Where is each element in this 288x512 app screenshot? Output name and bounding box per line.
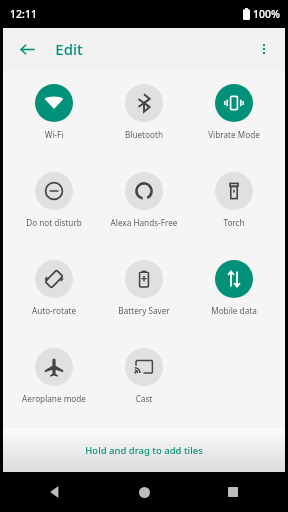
- button[interactable]: Back: [12, 34, 42, 64]
- staticText: Cast: [101, 393, 187, 404]
- staticText: Wi-Fi: [11, 129, 97, 140]
- staticText: Vibrate Mode: [191, 129, 277, 140]
- button[interactable]: Home: [129, 477, 159, 507]
- button[interactable]: More options: [250, 35, 278, 63]
- button[interactable]: Hold and drag to add tiles: [3, 428, 285, 472]
- staticText: 100%: [253, 7, 280, 21]
- button[interactable]: Mobile data: [189, 260, 279, 316]
- button[interactable]: Vibrate Mode: [189, 84, 279, 140]
- button[interactable]: Do not disturb: [9, 172, 99, 228]
- button[interactable]: Aeroplane mode: [9, 348, 99, 404]
- staticText: Battery Saver: [101, 305, 187, 316]
- staticText: Hold and drag to add tiles: [85, 444, 203, 457]
- staticText: Do not disturb: [11, 217, 97, 228]
- staticText: Aeroplane mode: [11, 393, 97, 404]
- button[interactable]: Battery Saver: [99, 260, 189, 316]
- button[interactable]: Back: [40, 477, 70, 507]
- staticText: Torch: [191, 217, 277, 228]
- button[interactable]: Auto-rotate: [9, 260, 99, 316]
- staticText: Auto-rotate: [11, 305, 97, 316]
- button[interactable]: Wi-Fi: [9, 84, 99, 140]
- button[interactable]: Torch: [189, 172, 279, 228]
- staticText: 12:11: [10, 7, 37, 21]
- staticText: Edit: [55, 39, 83, 59]
- button[interactable]: Alexa Hands-Free: [99, 172, 189, 228]
- button[interactable]: Recents: [218, 477, 248, 507]
- staticText: Bluetooth: [101, 129, 187, 140]
- button[interactable]: Bluetooth: [99, 84, 189, 140]
- staticText: Alexa Hands-Free: [101, 217, 187, 228]
- button[interactable]: Cast: [99, 348, 189, 404]
- staticText: Mobile data: [191, 305, 277, 316]
